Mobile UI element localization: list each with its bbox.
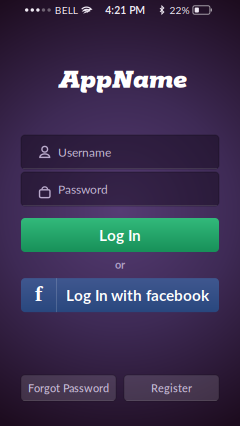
button[interactable]: Log In with facebook [21, 278, 219, 312]
staticText: Username [58, 145, 111, 159]
staticText: BELL [55, 4, 78, 16]
staticText: 4:21 PM [105, 4, 145, 16]
staticText: Forgot Password [28, 381, 109, 394]
staticText: Register [151, 381, 192, 394]
staticText: or [115, 258, 125, 271]
staticText: 22% [169, 4, 189, 16]
button[interactable]: Log In [21, 218, 219, 252]
staticText: Password [58, 182, 108, 196]
button[interactable]: Forgot Password [21, 375, 116, 401]
button[interactable]: Register [124, 375, 219, 401]
staticText: AppName [59, 64, 187, 97]
staticText: f [34, 282, 42, 308]
staticText: Log In with facebook [66, 286, 209, 304]
staticText: Log In [99, 226, 141, 244]
